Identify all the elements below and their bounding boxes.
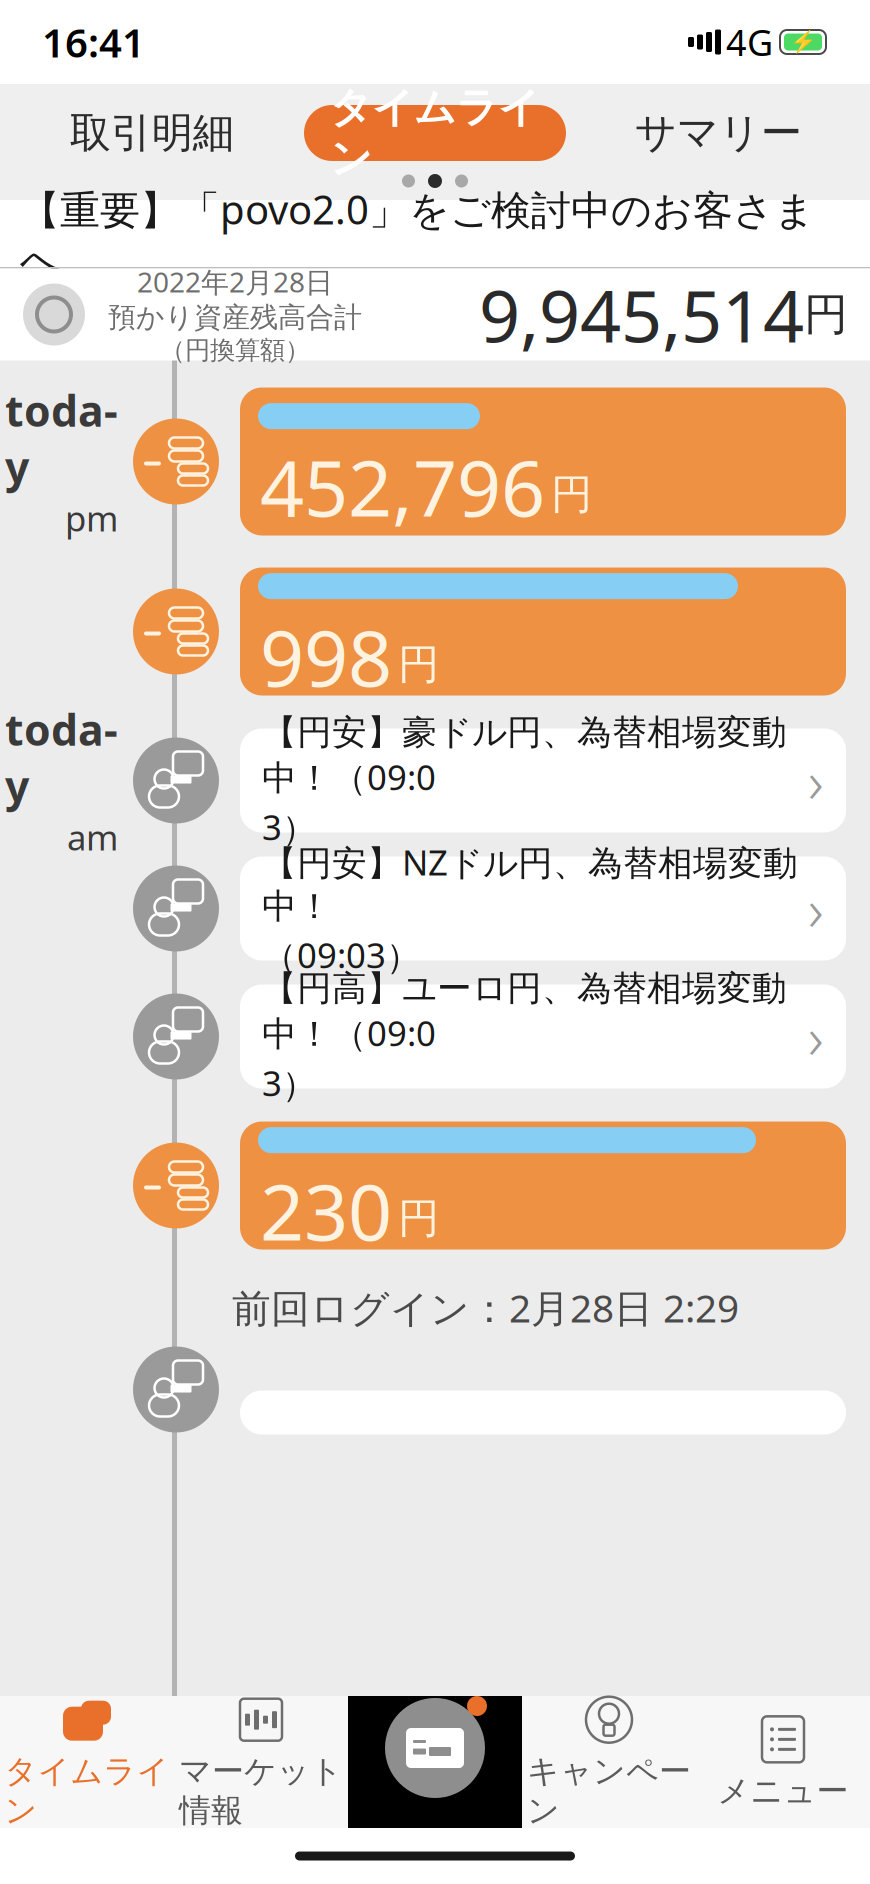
staticText: 9,945,514	[479, 267, 804, 362]
button[interactable]: タイムライン	[293, 105, 577, 161]
staticText: 16:41	[42, 15, 145, 68]
staticText: （円換算額）	[160, 335, 310, 366]
staticText: 230	[260, 1159, 392, 1262]
staticText: 452,796	[260, 435, 545, 538]
button[interactable]: 230	[240, 1121, 846, 1249]
staticText: 円	[398, 639, 439, 690]
staticText: 円	[804, 287, 848, 341]
button[interactable]: 取引明細	[10, 102, 293, 164]
button[interactable]: 【円安】NZドル円、為替相場変動中！	[240, 856, 846, 960]
button[interactable]: メニュー	[696, 1696, 870, 1828]
staticText: 円	[398, 1193, 439, 1244]
staticText: 【円安】NZドル円、為替相場変動中！	[262, 839, 798, 928]
button[interactable]: キャンペーン	[522, 1696, 696, 1828]
staticText: 【円高】ユーロ円、為替相場変動中！（09:0	[262, 967, 787, 1056]
staticText: today	[5, 701, 118, 814]
button[interactable]: サマリー	[577, 102, 860, 164]
button[interactable]: 998	[240, 567, 846, 695]
button[interactable]: 452,796	[240, 387, 846, 535]
staticText: ⚡	[789, 30, 816, 54]
button[interactable]: 口座	[380, 1693, 490, 1803]
staticText: 【重要】「povo2.0」をご検討中のお客さまへ	[20, 182, 815, 285]
staticText: 3）	[262, 804, 317, 850]
staticText: ›	[808, 997, 824, 1075]
staticText: 前回ログイン：2月28日 2:29	[232, 1282, 739, 1333]
staticText: マーケット情報	[179, 1752, 343, 1830]
staticText: ›	[808, 741, 824, 819]
staticText: today	[5, 382, 118, 495]
staticText: タイムライン	[330, 82, 540, 184]
button[interactable]: タイムライン	[0, 1696, 174, 1828]
staticText: 取引明細	[70, 108, 234, 158]
staticText: pm	[65, 495, 118, 541]
staticText: メニュー	[717, 1771, 848, 1811]
staticText: キャンペーン	[527, 1752, 691, 1830]
staticText: am	[67, 814, 118, 860]
staticText: ›	[808, 869, 824, 947]
staticText: 4G	[726, 18, 773, 66]
button[interactable]: 口座	[348, 1696, 522, 1828]
staticText: 【円安】豪ドル円、為替相場変動中！（09:0	[262, 711, 787, 800]
staticText: （09:03）	[262, 932, 421, 978]
button[interactable]: 【重要】「povo2.0」をご検討中のお客さまへ	[0, 200, 870, 267]
button[interactable]: 【円安】豪ドル円、為替相場変動中！（09:0	[240, 728, 846, 832]
staticText: 3）	[262, 1060, 317, 1106]
staticText: 998	[260, 605, 392, 708]
staticText: 円	[551, 469, 592, 520]
button[interactable]: 更新	[14, 274, 94, 354]
button[interactable]: 【円高】ユーロ円、為替相場変動中！（09:0	[240, 984, 846, 1088]
staticText: 2022年2月28日	[137, 263, 333, 300]
button[interactable]	[240, 1344, 846, 1434]
staticText: 預かり資産残高合計	[108, 300, 362, 335]
staticText: サマリー	[635, 108, 802, 158]
button[interactable]: マーケット情報	[174, 1696, 348, 1828]
staticText: タイムライン	[4, 1752, 169, 1830]
